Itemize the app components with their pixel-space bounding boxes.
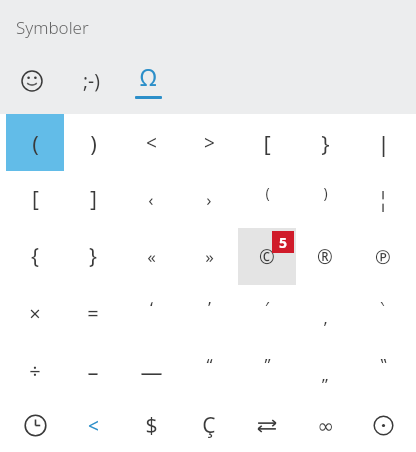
button[interactable]: left paren xyxy=(6,114,64,171)
staticText: ℗ xyxy=(375,244,391,270)
button[interactable]: Symbols xyxy=(120,56,177,106)
staticText: < xyxy=(146,130,157,156)
staticText: $ xyxy=(145,411,158,440)
button[interactable]: clock xyxy=(6,399,64,452)
button[interactable]: prime xyxy=(238,285,296,342)
staticText: = xyxy=(87,300,99,327)
button[interactable]: double left angle xyxy=(122,228,180,285)
button[interactable]: sound recording copyright xyxy=(354,228,412,285)
staticText: ÷ xyxy=(29,357,41,384)
button[interactable]: registered xyxy=(296,228,354,285)
staticText: ® xyxy=(317,244,333,270)
staticText: { xyxy=(31,242,39,271)
button[interactable]: right single quote xyxy=(180,285,238,342)
button[interactable]: left single quote xyxy=(122,285,180,342)
button[interactable]: superscript right paren xyxy=(296,171,354,228)
button[interactable]: multiplication xyxy=(6,285,64,342)
button[interactable]: Emoji xyxy=(0,56,63,106)
staticText: ‟ xyxy=(380,353,387,376)
staticText: Ω xyxy=(140,61,157,92)
staticText: „ xyxy=(321,363,329,386)
button[interactable]: right paren xyxy=(64,114,122,171)
button[interactable]: right square bracket xyxy=(64,171,122,228)
button[interactable]: single left angle xyxy=(122,171,180,228)
staticText: Ç xyxy=(202,411,216,440)
button[interactable]: less than xyxy=(64,399,122,452)
button[interactable]: division xyxy=(6,342,64,399)
button[interactable]: right double quote xyxy=(238,342,296,399)
staticText: ;-) xyxy=(83,68,100,94)
staticText: ( xyxy=(265,183,270,202)
button[interactable]: broken bar xyxy=(354,171,412,228)
button[interactable]: copyright xyxy=(238,228,296,285)
button[interactable]: circled dot xyxy=(354,399,412,452)
staticText: « xyxy=(147,245,156,268)
staticText: × xyxy=(29,300,41,327)
staticText: » xyxy=(205,245,214,268)
staticText: © xyxy=(259,244,275,270)
staticText: [ xyxy=(32,185,39,214)
button[interactable]: infinity xyxy=(296,399,354,452)
button[interactable]: left brace xyxy=(6,228,64,285)
button[interactable]: vertical bar xyxy=(354,114,412,171)
button[interactable]: swap arrows xyxy=(238,399,296,452)
staticText: ‹ xyxy=(148,188,154,211)
button[interactable]: single right angle xyxy=(180,171,238,228)
button[interactable]: left double quote xyxy=(180,342,238,399)
staticText: ¦ xyxy=(377,185,389,214)
button[interactable]: low single quote xyxy=(296,285,354,342)
staticText: ∞ xyxy=(317,414,334,437)
staticText: | xyxy=(377,128,390,158)
staticText: ’ xyxy=(208,296,211,319)
staticText: } xyxy=(321,128,330,158)
staticText: › xyxy=(206,188,212,211)
button[interactable]: equals xyxy=(64,285,122,342)
button[interactable]: right brace xyxy=(64,228,122,285)
button[interactable]: dollar xyxy=(122,399,180,452)
button[interactable]: Kaomoji xyxy=(63,56,120,106)
button[interactable]: C cedilla xyxy=(180,399,238,452)
staticText: ‚ xyxy=(323,306,328,329)
button[interactable]: en dash xyxy=(64,342,122,399)
staticText: ) xyxy=(323,183,328,202)
button[interactable]: superscript left paren xyxy=(238,171,296,228)
staticText: > xyxy=(204,130,215,156)
staticText: ” xyxy=(264,353,271,376)
button[interactable]: left square bracket xyxy=(6,171,64,228)
staticText: ) xyxy=(90,128,97,158)
button[interactable]: greater than xyxy=(180,114,238,171)
staticText: ‘ xyxy=(150,296,153,319)
button[interactable]: em dash xyxy=(122,342,180,399)
staticText: < xyxy=(88,413,99,439)
staticText: ′ xyxy=(265,296,269,319)
button[interactable]: reversed double quote xyxy=(354,342,412,399)
staticText: Symboler xyxy=(16,16,89,39)
staticText: 5 xyxy=(279,233,288,252)
staticText: } xyxy=(89,242,97,271)
staticText: [ xyxy=(263,128,271,158)
staticText: — xyxy=(140,356,163,386)
button[interactable]: reversed prime xyxy=(354,285,412,342)
staticText: ] xyxy=(90,185,97,214)
button[interactable]: double right angle xyxy=(180,228,238,285)
staticText: “ xyxy=(206,353,213,376)
button[interactable]: less than xyxy=(122,114,180,171)
button[interactable]: low double quote xyxy=(296,342,354,399)
button[interactable]: left bracket xyxy=(238,114,296,171)
staticText: ( xyxy=(32,128,39,158)
staticText: – xyxy=(87,356,99,386)
button[interactable]: right brace xyxy=(296,114,354,171)
staticText: ‵ xyxy=(381,296,385,319)
